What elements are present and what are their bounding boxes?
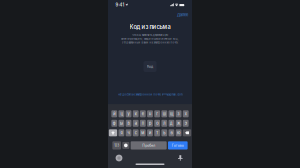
- staticText: Чтобы включить двухэтапную: [132, 33, 168, 37]
- button[interactable]: ц: [118, 110, 124, 117]
- staticText: х: [185, 111, 187, 116]
- button[interactable]: г: [154, 110, 160, 117]
- staticText: д: [170, 121, 173, 126]
- staticText: о: [156, 121, 158, 126]
- button[interactable]: з: [176, 110, 181, 117]
- button[interactable]: Пробел: [131, 141, 167, 149]
- button[interactable]: ж: [176, 120, 181, 127]
- button[interactable]: й: [111, 110, 117, 117]
- staticText: р: [149, 121, 151, 126]
- staticText: п: [142, 121, 144, 126]
- button[interactable]: Change keyboard: [122, 142, 129, 149]
- button[interactable]: д: [168, 120, 174, 127]
- staticText: з: [178, 111, 180, 116]
- button[interactable]: э: [183, 120, 189, 127]
- button[interactable]: х: [183, 110, 189, 117]
- staticText: г: [156, 111, 158, 116]
- staticText: 123: [114, 143, 119, 147]
- staticText: ч: [127, 130, 129, 135]
- staticText: ы: [120, 121, 123, 126]
- button[interactable]: ч: [126, 129, 131, 136]
- button[interactable]: п: [140, 120, 146, 127]
- staticText: б: [170, 130, 172, 135]
- button[interactable]: Готово: [168, 141, 188, 149]
- button[interactable]: Нет доступа к электронной почте a****v@g…: [117, 93, 182, 96]
- staticText: е: [142, 111, 144, 116]
- staticText: ц: [120, 111, 122, 116]
- staticText: Код из письма: [129, 23, 170, 30]
- button[interactable]: у: [126, 110, 131, 117]
- button[interactable]: ф: [111, 120, 117, 127]
- button[interactable]: к: [133, 110, 139, 117]
- staticText: аутентификацию, введите шестизначный код…: [121, 37, 179, 40]
- button[interactable]: ы: [118, 120, 124, 127]
- staticText: э: [185, 121, 187, 126]
- button[interactable]: о: [154, 120, 160, 127]
- staticText: ю: [177, 130, 180, 135]
- button[interactable]: я: [118, 129, 124, 136]
- button[interactable]: ю: [176, 129, 181, 136]
- button[interactable]: Shift: [109, 129, 117, 136]
- button[interactable]: Далее: [173, 11, 192, 19]
- button[interactable]: т: [154, 129, 160, 136]
- staticText: Далее: [177, 12, 188, 17]
- staticText: щ: [170, 111, 173, 116]
- staticText: л: [163, 121, 165, 126]
- button[interactable]: р: [147, 120, 153, 127]
- staticText: ж: [177, 121, 180, 126]
- staticText: я: [120, 130, 122, 135]
- button[interactable]: Delete: [183, 129, 191, 136]
- staticText: 9:41: [115, 2, 124, 7]
- staticText: т: [156, 130, 158, 135]
- button[interactable]: е: [140, 110, 146, 117]
- button[interactable]: 123: [112, 141, 121, 149]
- staticText: отправленный Вами на электронную почту.: [121, 41, 178, 44]
- staticText: и: [149, 130, 151, 135]
- button[interactable]: с: [133, 129, 139, 136]
- button[interactable]: б: [168, 129, 174, 136]
- staticText: Нет доступа к электронной почте a****v@g…: [117, 93, 182, 96]
- staticText: ш: [163, 111, 166, 116]
- button[interactable]: щ: [168, 110, 174, 117]
- button[interactable]: ш: [161, 110, 167, 117]
- staticText: Готово: [172, 143, 184, 147]
- staticText: м: [141, 130, 144, 135]
- staticText: а: [135, 121, 137, 126]
- button[interactable]: Emoji: [115, 154, 122, 161]
- staticText: Пробел: [142, 143, 155, 147]
- staticText: в: [127, 121, 129, 126]
- staticText: с: [135, 130, 137, 135]
- staticText: к: [135, 111, 137, 116]
- button[interactable]: л: [161, 120, 167, 127]
- staticText: ф: [113, 121, 116, 126]
- staticText: Код: [147, 64, 153, 69]
- staticText: н: [149, 111, 151, 116]
- button[interactable]: м: [140, 129, 146, 136]
- button[interactable]: а: [133, 120, 139, 127]
- button[interactable]: н: [147, 110, 153, 117]
- staticText: у: [127, 111, 129, 116]
- button[interactable]: Dictation: [178, 155, 183, 161]
- staticText: й: [113, 111, 115, 116]
- staticText: ь: [163, 130, 165, 135]
- button[interactable]: ь: [161, 129, 167, 136]
- button[interactable]: в: [126, 120, 131, 127]
- button[interactable]: и: [147, 129, 153, 136]
